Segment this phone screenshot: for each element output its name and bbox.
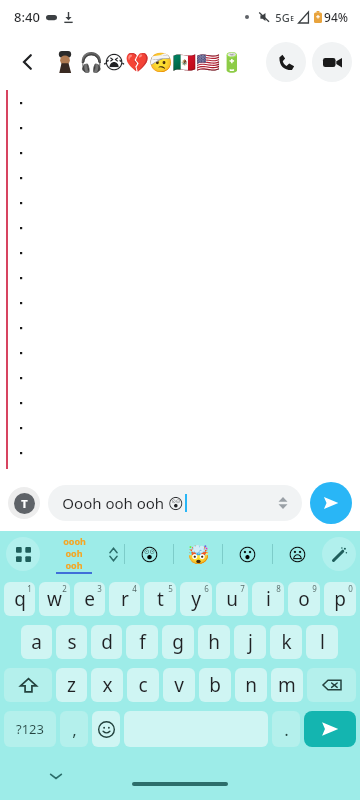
- staticText: 5: [168, 583, 173, 594]
- staticText: Oooh ooh ooh 😲: [62, 493, 184, 513]
- button[interactable]: m: [271, 668, 303, 702]
- button[interactable]: Toolbar: [6, 537, 40, 571]
- staticText: q: [14, 586, 26, 612]
- button[interactable]: Expand: [102, 543, 124, 565]
- staticText: r: [121, 586, 129, 612]
- staticText: v: [174, 672, 184, 698]
- button[interactable]: Backspace: [307, 668, 356, 702]
- button[interactable]: Back: [8, 42, 48, 82]
- staticText: o: [298, 586, 310, 612]
- button[interactable]: p: [324, 582, 356, 616]
- button[interactable]: o: [288, 582, 320, 616]
- staticText: 🤯: [187, 544, 210, 565]
- button[interactable]: h: [198, 625, 230, 659]
- button[interactable]: a: [21, 625, 52, 659]
- staticText: 😦: [288, 544, 307, 565]
- button[interactable]: Send: [304, 711, 356, 747]
- button[interactable]: k: [270, 625, 302, 659]
- staticText: 🎧😭💔🤕🇲🇽🇺🇸🔋: [79, 51, 244, 73]
- staticText: 9: [312, 583, 317, 594]
- button[interactable]: Text format: [8, 487, 40, 519]
- staticText: w: [47, 586, 62, 612]
- staticText: .: [284, 718, 289, 741]
- staticText: ?123: [16, 720, 44, 738]
- staticText: 94%: [324, 9, 348, 25]
- button[interactable]: g: [162, 625, 194, 659]
- staticText: g: [172, 629, 184, 655]
- staticText: s: [67, 629, 77, 655]
- staticText: p: [334, 586, 346, 612]
- button[interactable]: Send: [310, 482, 352, 524]
- button[interactable]: d: [91, 625, 122, 659]
- staticText: n: [245, 672, 257, 698]
- staticText: h: [208, 629, 220, 655]
- button[interactable]: y: [180, 582, 212, 616]
- button[interactable]: Smart compose: [322, 537, 356, 571]
- button[interactable]: ?123: [4, 711, 56, 747]
- button[interactable]: t: [144, 582, 176, 616]
- staticText: 😮: [238, 544, 257, 565]
- button[interactable]: u: [216, 582, 248, 616]
- button[interactable]: b: [199, 668, 231, 702]
- button[interactable]: Emoji: [92, 711, 120, 747]
- staticText: 1: [27, 583, 32, 594]
- staticText: j: [248, 629, 253, 655]
- staticText: T: [21, 496, 28, 511]
- button[interactable]: 😦: [273, 531, 322, 577]
- staticText: y: [191, 586, 201, 612]
- staticText: 8: [276, 583, 281, 594]
- staticText: c: [138, 672, 148, 698]
- staticText: b: [209, 672, 221, 698]
- staticText: l: [320, 629, 325, 655]
- button[interactable]: r: [109, 582, 140, 616]
- button[interactable]: 😮: [223, 531, 272, 577]
- staticText: 0: [348, 583, 353, 594]
- button[interactable]: Call: [266, 42, 306, 82]
- button[interactable]: Shift: [4, 668, 52, 702]
- staticText: 7: [240, 583, 245, 594]
- button[interactable]: q: [4, 582, 35, 616]
- button[interactable]: 😲: [125, 531, 173, 577]
- staticText: e: [84, 586, 95, 612]
- button[interactable]: j: [234, 625, 266, 659]
- button[interactable]: s: [56, 625, 87, 659]
- staticText: k: [281, 629, 292, 655]
- staticText: f: [139, 629, 146, 655]
- button[interactable]: .: [272, 711, 300, 747]
- button[interactable]: oooh: [54, 535, 94, 574]
- button[interactable]: c: [127, 668, 159, 702]
- button[interactable]: w: [39, 582, 70, 616]
- staticText: 8:40: [14, 8, 40, 26]
- button[interactable]: e: [74, 582, 105, 616]
- button[interactable]: ,: [60, 711, 88, 747]
- button[interactable]: Hide keyboard: [44, 764, 68, 788]
- button[interactable]: x: [91, 668, 123, 702]
- button[interactable]: n: [235, 668, 267, 702]
- staticText: z: [67, 672, 76, 698]
- staticText: a: [31, 629, 42, 655]
- button[interactable]: l: [306, 625, 338, 659]
- button[interactable]: Video call: [312, 42, 352, 82]
- staticText: 2: [62, 583, 67, 594]
- staticText: i: [266, 586, 271, 612]
- button[interactable]: v: [163, 668, 195, 702]
- button[interactable]: 🎧😭💔🤕🇲🇽🇺🇸🔋: [54, 51, 266, 73]
- staticText: ᴇ: [290, 12, 294, 23]
- staticText: t: [157, 586, 164, 612]
- staticText: ,: [72, 718, 77, 741]
- staticText: 4: [132, 583, 137, 594]
- button[interactable]: i: [252, 582, 284, 616]
- staticText: 6: [204, 583, 209, 594]
- staticText: 😲: [140, 544, 159, 565]
- staticText: 3: [97, 583, 102, 594]
- staticText: 5G: [275, 10, 290, 25]
- staticText: ooh: [65, 547, 83, 559]
- button[interactable]: f: [126, 625, 158, 659]
- button[interactable]: Space: [124, 711, 268, 747]
- staticText: d: [101, 629, 113, 655]
- button[interactable]: 🤯: [174, 531, 222, 577]
- staticText: oooh: [63, 535, 86, 547]
- button[interactable]: Oooh ooh ooh 😲: [48, 485, 302, 521]
- staticText: m: [278, 672, 296, 698]
- button[interactable]: z: [56, 668, 87, 702]
